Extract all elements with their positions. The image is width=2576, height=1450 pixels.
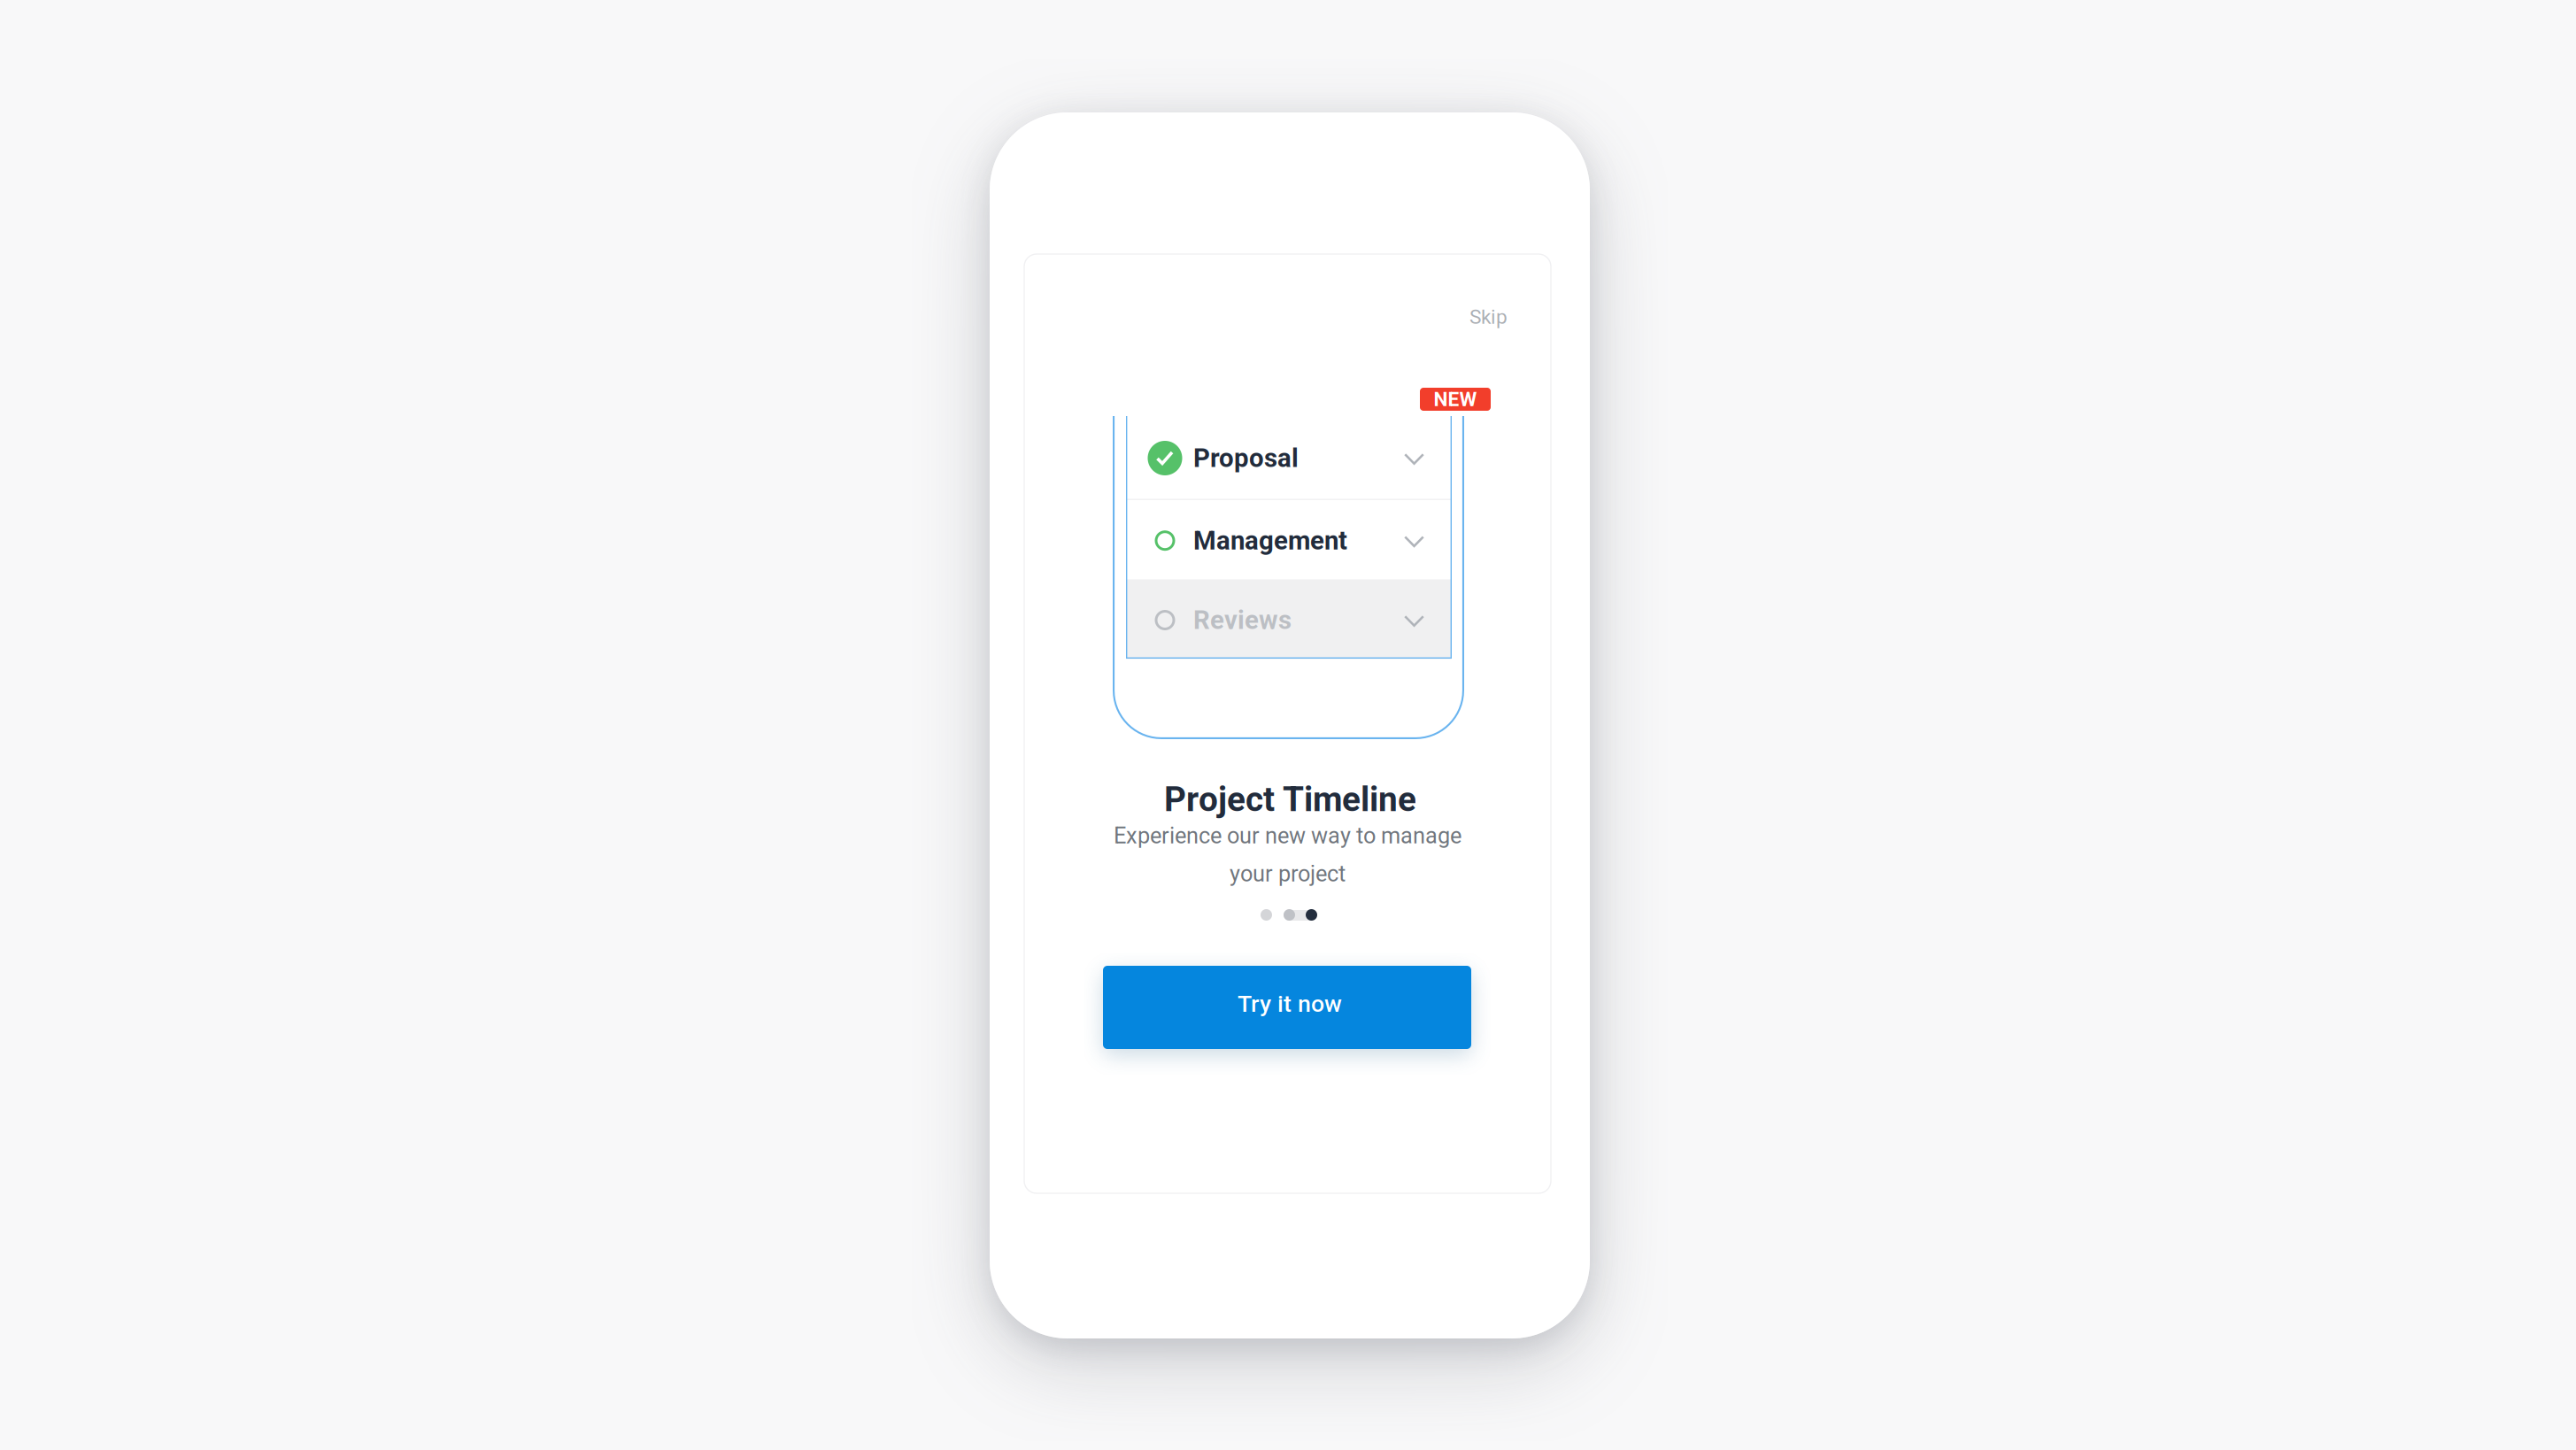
staticText: Experience our new way to manage	[1114, 823, 1462, 849]
staticText: Proposal	[1193, 443, 1299, 473]
staticText: Skip	[1469, 305, 1508, 329]
button[interactable]: Try it now	[1103, 966, 1471, 1049]
staticText: NEW	[1434, 387, 1477, 411]
button[interactable]: Management	[1126, 500, 1452, 579]
button[interactable]: Proposal	[1126, 416, 1452, 499]
staticText: Try it now	[1238, 990, 1342, 1018]
staticText: Management	[1193, 525, 1347, 556]
staticText: Reviews	[1193, 605, 1292, 635]
button[interactable]: Reviews	[1126, 579, 1452, 659]
staticText: your project	[1230, 861, 1346, 887]
staticText: Project Timeline	[1164, 779, 1416, 819]
button[interactable]: Skip	[1423, 295, 1508, 339]
